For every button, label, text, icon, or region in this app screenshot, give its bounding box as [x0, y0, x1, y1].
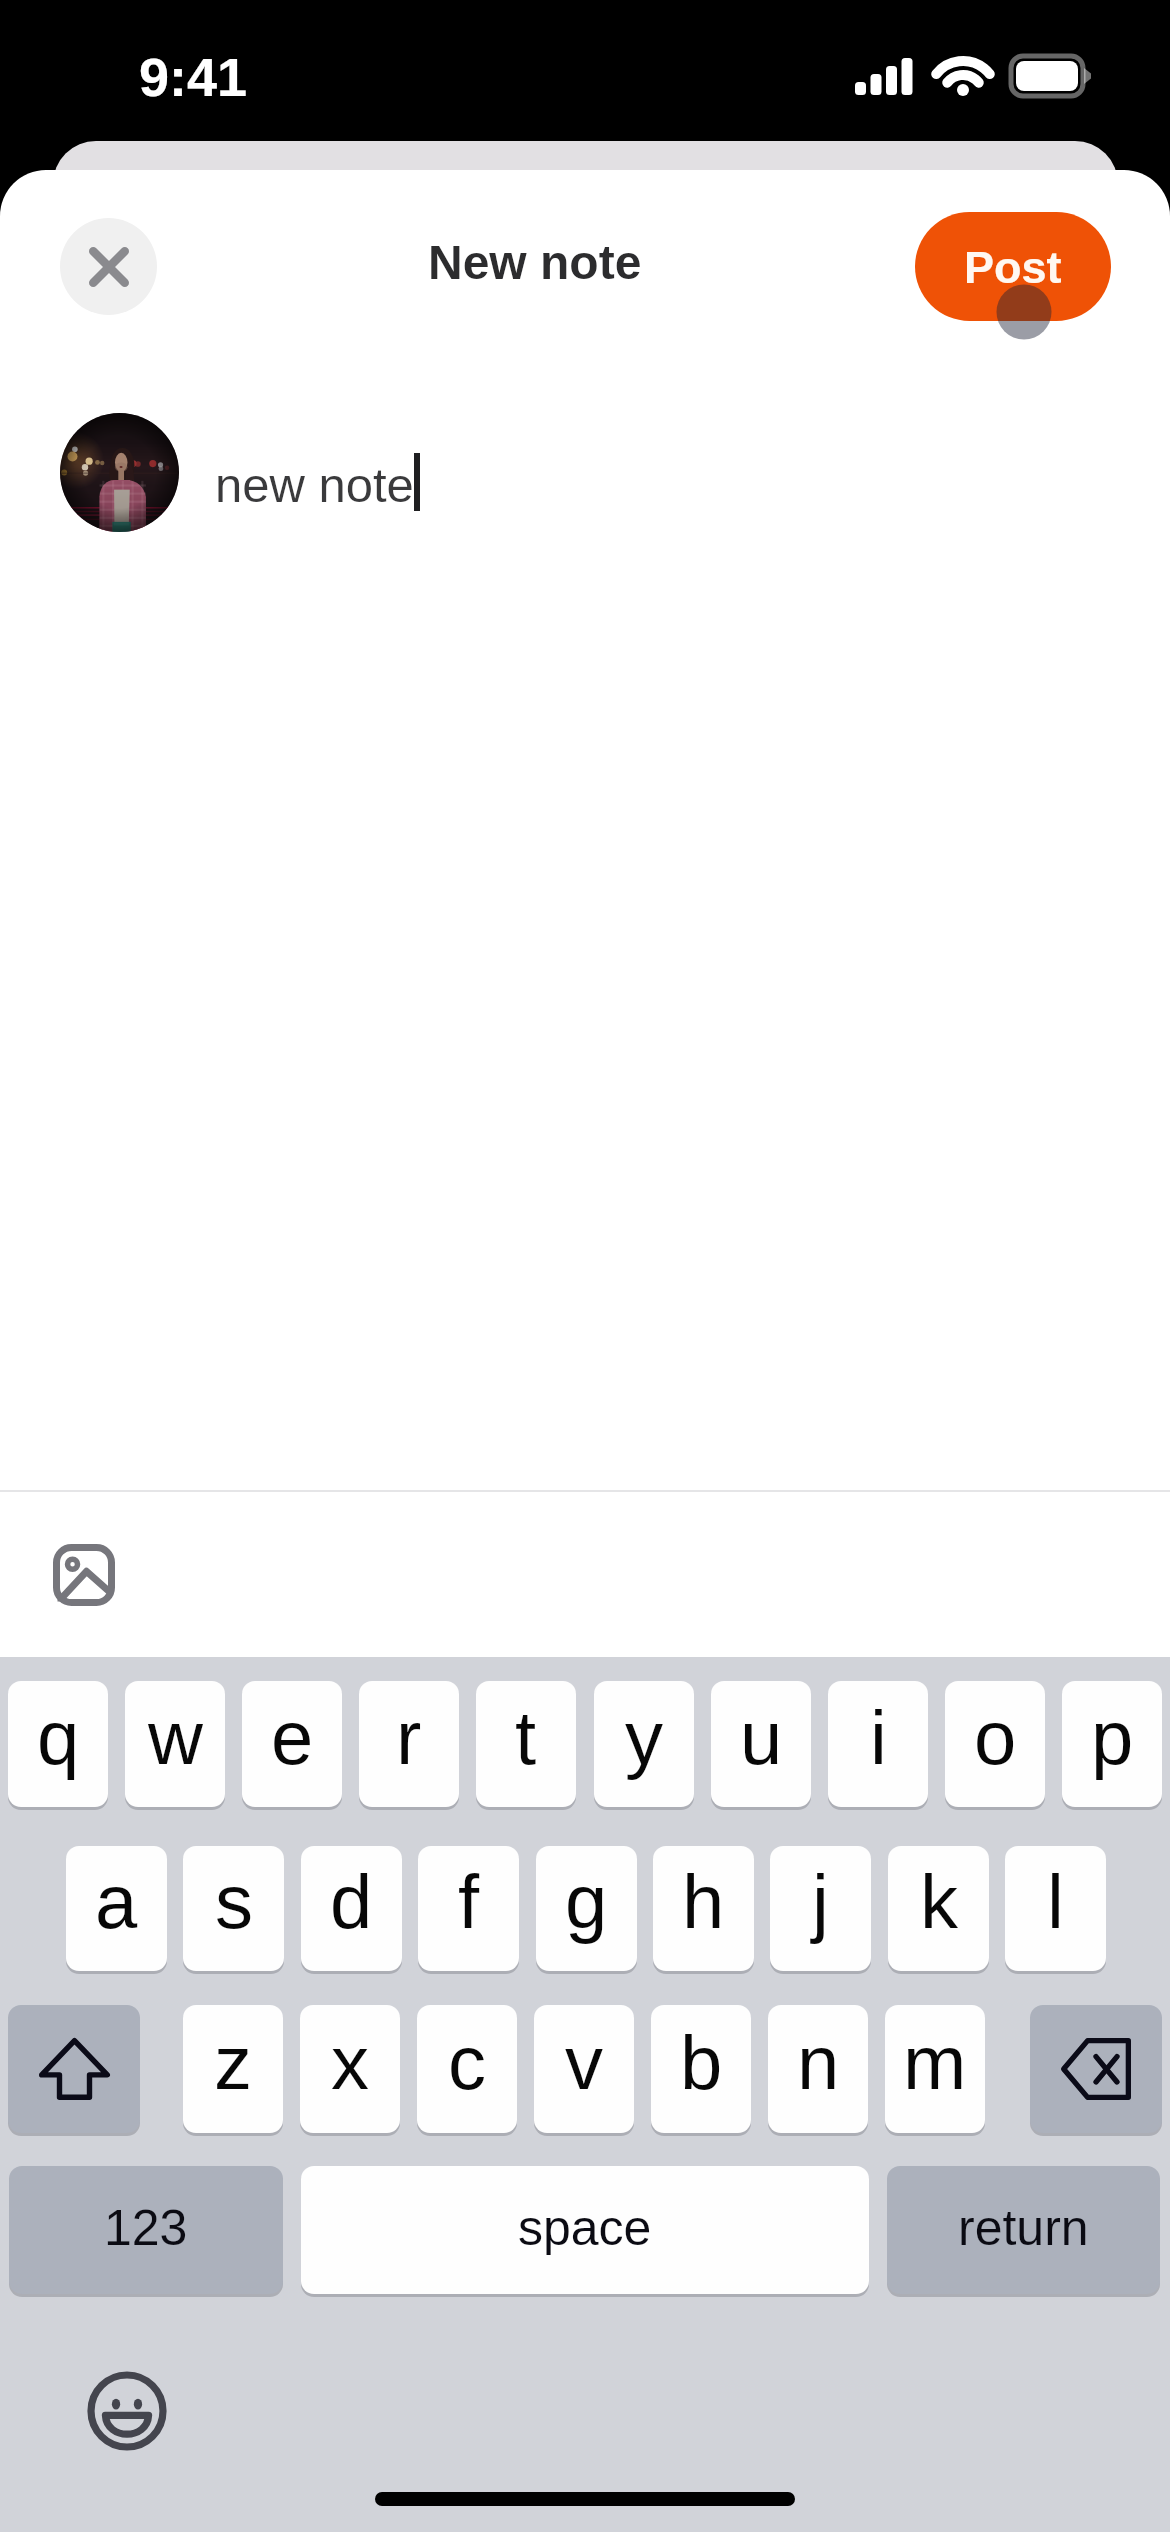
staticText: 123 [104, 2200, 188, 2256]
staticText: t [515, 1695, 537, 1780]
staticText: q [37, 1695, 80, 1780]
staticText: f [458, 1859, 480, 1944]
staticText: w [148, 1695, 203, 1780]
button[interactable]: Shift [8, 2005, 140, 2133]
staticText: j [812, 1859, 829, 1944]
button[interactable]: y [594, 1681, 694, 1807]
button[interactable]: a [66, 1846, 167, 1971]
staticText: u [740, 1695, 783, 1780]
button[interactable]: u [711, 1681, 811, 1807]
staticText: s [215, 1859, 253, 1944]
button[interactable]: k [888, 1846, 989, 1971]
staticText: space [518, 2200, 652, 2256]
button[interactable]: r [359, 1681, 459, 1807]
button[interactable]: w [125, 1681, 225, 1807]
button[interactable]: h [653, 1846, 754, 1971]
button[interactable]: b [651, 2005, 751, 2133]
staticText: a [95, 1859, 138, 1944]
staticText: Post [964, 242, 1062, 292]
button[interactable]: n [768, 2005, 868, 2133]
staticText: z [214, 2020, 252, 2105]
staticText: m [903, 2020, 967, 2105]
button[interactable]: Close [60, 218, 157, 315]
button[interactable]: e [242, 1681, 342, 1807]
button[interactable]: Emoji keyboard [86, 2370, 168, 2452]
staticText: New note [428, 236, 642, 290]
button[interactable]: m [885, 2005, 985, 2133]
button[interactable]: i [828, 1681, 928, 1807]
button[interactable]: x [300, 2005, 400, 2133]
button[interactable]: z [183, 2005, 283, 2133]
staticText: p [1091, 1695, 1134, 1780]
staticText: k [920, 1859, 958, 1944]
staticText: n [797, 2020, 840, 2105]
staticText: y [625, 1695, 663, 1780]
button[interactable]: 123 [9, 2166, 283, 2294]
staticText: c [448, 2020, 486, 2105]
staticText: x [331, 2020, 369, 2105]
staticText: g [565, 1859, 608, 1944]
button[interactable]: o [945, 1681, 1045, 1807]
button[interactable]: j [770, 1846, 871, 1971]
staticText: o [974, 1695, 1017, 1780]
button[interactable]: space [301, 2166, 869, 2294]
staticText: return [958, 2200, 1089, 2256]
staticText: new note [215, 458, 414, 513]
staticText: 9:41 [139, 47, 248, 107]
button[interactable]: return [887, 2166, 1160, 2294]
button[interactable]: t [476, 1681, 576, 1807]
button[interactable]: g [536, 1846, 637, 1971]
button[interactable]: f [418, 1846, 519, 1971]
button[interactable]: p [1062, 1681, 1162, 1807]
staticText: e [271, 1695, 314, 1780]
button[interactable]: v [534, 2005, 634, 2133]
staticText: b [680, 2020, 723, 2105]
staticText: v [565, 2020, 603, 2105]
button[interactable]: Backspace [1030, 2005, 1162, 2133]
button[interactable]: l [1005, 1846, 1106, 1971]
button[interactable]: Add image [24, 1515, 144, 1635]
staticText: h [682, 1859, 725, 1944]
staticText: r [396, 1695, 422, 1780]
staticText: d [330, 1859, 373, 1944]
staticText: l [1047, 1859, 1064, 1944]
button[interactable]: s [183, 1846, 284, 1971]
staticText: i [870, 1695, 887, 1780]
button[interactable]: c [417, 2005, 517, 2133]
button[interactable]: q [8, 1681, 108, 1807]
button[interactable]: d [301, 1846, 402, 1971]
button[interactable]: Post [915, 212, 1111, 321]
